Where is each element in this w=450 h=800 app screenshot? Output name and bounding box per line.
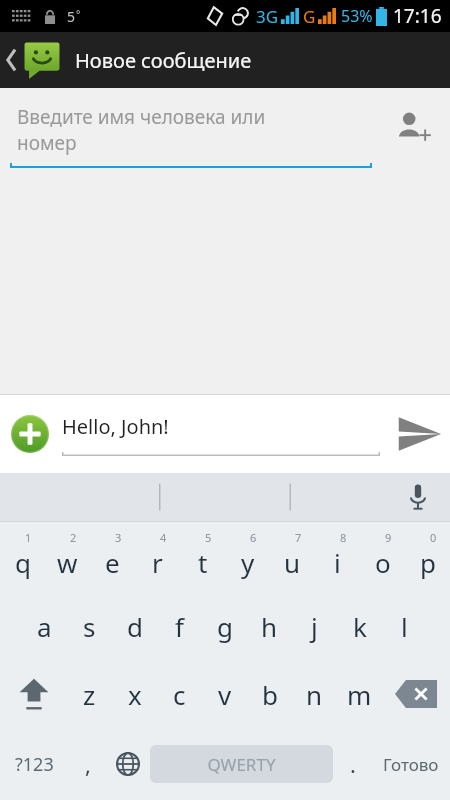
staticText: e [105,545,120,580]
button[interactable]: Voice input [398,477,438,517]
staticText: b [262,677,278,712]
button[interactable]: h [247,592,292,660]
button[interactable]: s [67,592,112,660]
button[interactable]: Введите имя человека или номер [17,104,372,156]
staticText: q [15,545,31,580]
staticText: 53% [341,5,373,27]
staticText: r [152,545,163,580]
button[interactable]: Send [390,405,448,463]
staticText: 3 [115,530,122,545]
staticText: ° [76,7,81,21]
staticText: 0 [430,530,437,545]
button[interactable]: 0 [405,522,450,592]
staticText: Новое сообщение [75,47,252,74]
staticText: v [218,677,232,712]
staticText: s [83,609,96,644]
button[interactable]: 5 [180,522,225,592]
staticText: t [198,545,208,580]
staticText: G [303,5,316,28]
button[interactable]: v [202,660,247,728]
staticText: 17:16 [393,3,442,29]
button[interactable]: 8 [315,522,360,592]
staticText: 9 [385,530,392,545]
staticText: Введите имя человека или номер [17,104,266,156]
button[interactable]: Back [0,32,450,88]
button[interactable]: Backspace [382,660,450,728]
staticText: 4 [160,530,167,545]
staticText: 3G [256,5,279,28]
button[interactable]: d [112,592,157,660]
staticText: . [350,749,356,779]
staticText: Готово [383,753,439,776]
staticText: 7 [295,530,302,545]
button[interactable]: Change language [106,728,150,800]
other: Back [5,47,19,73]
button[interactable]: z [67,660,112,728]
staticText: c [173,677,186,712]
staticText: i [334,545,341,580]
button[interactable]: 6 [225,522,270,592]
button[interactable]: m [337,660,382,728]
button[interactable]: QWERTY [150,745,333,783]
staticText: z [83,677,96,712]
button[interactable]: 9 [360,522,405,592]
button[interactable]: c [157,660,202,728]
button[interactable]: ?123 [0,728,69,800]
staticText: y [241,545,255,580]
staticText: f [175,609,184,644]
staticText: n [306,677,323,712]
staticText: o [375,545,391,580]
staticText: 5 [205,530,212,545]
button[interactable]: , [69,728,106,800]
staticText: ?123 [15,752,54,777]
staticText: 8 [340,530,347,545]
staticText: a [37,609,52,644]
staticText: g [217,609,233,644]
staticText: 6 [250,530,257,545]
staticText: 2 [70,530,77,545]
staticText: x [128,677,142,712]
staticText: h [261,609,278,644]
button[interactable]: b [247,660,292,728]
button[interactable]: 1 [0,522,45,592]
button[interactable]: Готово [372,728,450,800]
button[interactable]: a [22,592,67,660]
staticText: m [347,677,372,712]
staticText: w [57,545,78,580]
staticText: QWERTY [207,753,276,776]
button[interactable]: Shift [0,660,67,728]
button[interactable]: f [157,592,202,660]
button[interactable]: Hello, John! [62,413,380,456]
staticText: k [353,609,367,644]
button[interactable]: g [202,592,247,660]
staticText: d [127,609,143,644]
staticText: u [284,545,301,580]
button[interactable]: 7 [270,522,315,592]
button[interactable]: j [292,592,337,660]
staticText: l [401,609,408,644]
button[interactable]: k [337,592,382,660]
button[interactable]: . [333,728,372,800]
button[interactable]: 4 [135,522,180,592]
button[interactable]: 2 [45,522,90,592]
button[interactable]: Add recipient [390,104,436,150]
button[interactable]: x [112,660,157,728]
staticText: j [311,609,318,644]
staticText: 5 [67,7,76,26]
button[interactable]: l [382,592,427,660]
button[interactable]: Add attachment [8,412,52,456]
button[interactable]: n [292,660,337,728]
staticText: p [420,545,436,580]
staticText: Hello, John! [62,413,169,440]
staticText: 1 [25,530,32,545]
button[interactable]: 3 [90,522,135,592]
staticText: , [85,749,91,779]
